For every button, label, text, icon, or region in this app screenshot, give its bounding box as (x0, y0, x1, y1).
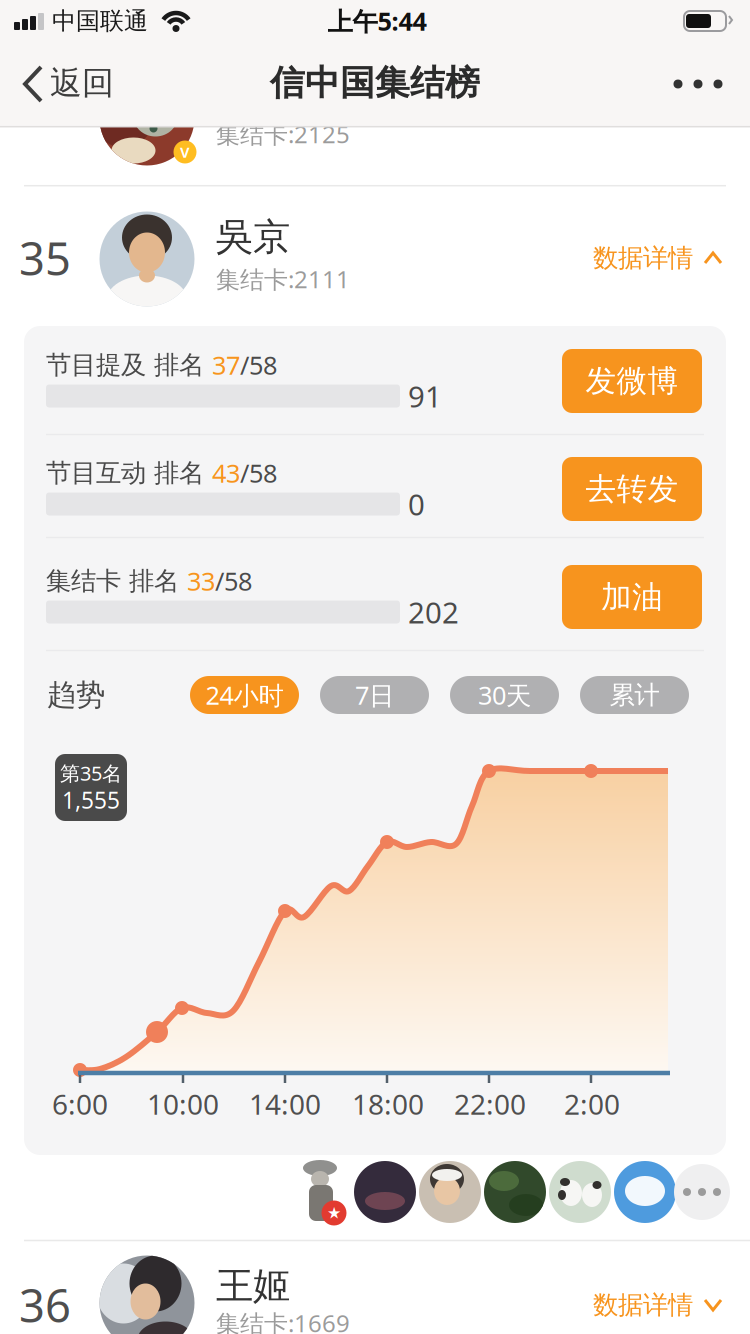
staticText: 1,555 (62, 785, 120, 815)
staticText: 91 (408, 376, 442, 415)
staticText: /58 (215, 564, 252, 598)
staticText: 第35名 (60, 760, 122, 786)
staticText: 趋势 (47, 677, 105, 713)
staticText: V (180, 142, 190, 162)
button[interactable]: 粉丝头像 (354, 1161, 416, 1223)
staticText: 2:00 (564, 1085, 620, 1123)
button[interactable]: 累计 (580, 676, 689, 714)
staticText: 加油 (601, 578, 663, 616)
button[interactable]: 去转发 (562, 457, 702, 521)
staticText: 14:00 (249, 1085, 321, 1123)
staticText: 数据详情 (593, 1289, 693, 1320)
staticText: 发微博 (585, 362, 678, 400)
staticText: 10:00 (147, 1085, 219, 1123)
staticText: 集结卡:2111 (216, 263, 350, 295)
staticText: 节目互动 排名 (46, 457, 212, 488)
button[interactable]: 粉丝头像 (549, 1161, 611, 1223)
staticText: 36 (19, 1275, 71, 1334)
staticText: 王姬 (216, 1263, 290, 1309)
button[interactable]: 发微博 (562, 349, 702, 413)
button[interactable]: 数据详情 (587, 1285, 727, 1325)
button[interactable]: 7日 (320, 676, 429, 714)
staticText: 18:00 (352, 1085, 424, 1123)
staticText: 上午5:44 (327, 4, 426, 38)
staticText: 202 (408, 592, 459, 631)
button[interactable]: 粉丝头像 (296, 1158, 348, 1222)
button[interactable]: 粉丝头像 (419, 1161, 481, 1223)
button[interactable]: 粉丝头像 (614, 1161, 676, 1223)
staticText: 中国联通 (52, 6, 148, 36)
staticText: 30天 (478, 678, 531, 712)
staticText: 集结卡:1669 (216, 1307, 350, 1334)
staticText: 去转发 (585, 470, 678, 508)
staticText: 信中国集结榜 (270, 62, 480, 104)
staticText: 35 (19, 228, 71, 288)
staticText: 6:00 (52, 1085, 108, 1123)
staticText: 集结卡:2125 (216, 118, 350, 150)
button[interactable]: 加油 (562, 565, 702, 629)
button[interactable]: 更多粉丝 (674, 1164, 730, 1220)
button[interactable]: 粉丝头像 (484, 1161, 546, 1223)
button[interactable]: 返回 (22, 64, 122, 104)
staticText: 0 (408, 484, 425, 523)
staticText: 43 (212, 456, 240, 490)
staticText: /58 (240, 456, 277, 490)
button[interactable]: 30天 (450, 676, 559, 714)
staticText: 24小时 (205, 678, 283, 712)
staticText: 37 (212, 348, 240, 382)
staticText: 22:00 (454, 1085, 526, 1123)
staticText: 数据详情 (593, 242, 693, 273)
staticText: 吳京 (216, 214, 290, 260)
button[interactable]: 数据详情 (587, 238, 727, 278)
staticText: 节目提及 排名 (46, 349, 212, 380)
staticText: /58 (240, 348, 277, 382)
staticText: 33 (187, 564, 215, 598)
button[interactable]: 更多 (663, 64, 733, 104)
staticText: 累计 (609, 679, 659, 710)
staticText: ★ (327, 1204, 341, 1222)
staticText: 集结卡 排名 (46, 565, 187, 596)
staticText: 7日 (355, 678, 394, 712)
button[interactable]: 24小时 (190, 676, 299, 714)
staticText: 返回 (50, 63, 114, 103)
